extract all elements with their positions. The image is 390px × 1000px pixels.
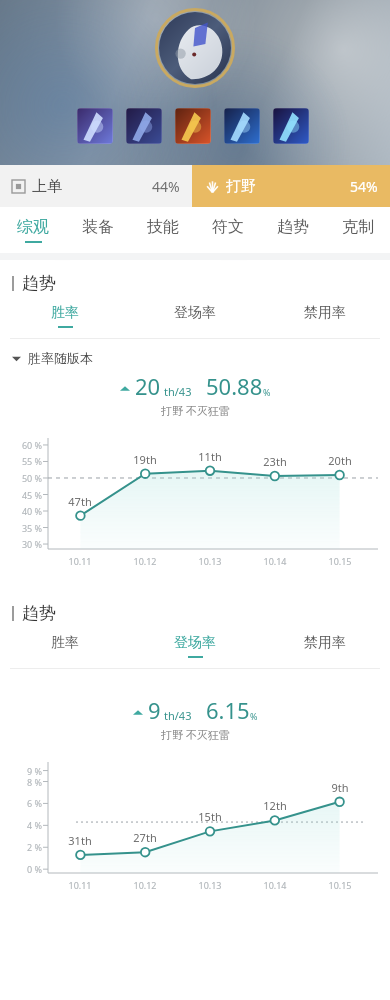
staticText: 9 % xyxy=(10,765,42,777)
staticText: 10.15 xyxy=(320,879,360,891)
button[interactable]: 登场率 xyxy=(130,624,260,668)
staticText: 打野 不灭狂雷 xyxy=(161,403,230,418)
button[interactable]: Skill 2 xyxy=(126,108,162,144)
staticText: 10.11 xyxy=(60,879,100,891)
staticText: 10.13 xyxy=(190,555,230,567)
button[interactable]: 禁用率 xyxy=(260,624,390,668)
staticText: 趋势 xyxy=(277,217,309,237)
button[interactable]: 打野 xyxy=(192,165,390,207)
staticText: 10.15 xyxy=(320,555,360,567)
staticText: % xyxy=(263,386,271,398)
staticText: 上单 xyxy=(32,177,62,196)
staticText: 禁用率 xyxy=(304,304,346,322)
staticText: 禁用率 xyxy=(304,634,346,652)
staticText: 40 % xyxy=(10,505,42,517)
staticText: 9 xyxy=(148,695,161,725)
button[interactable]: 上单 xyxy=(0,165,192,207)
staticText: 2 % xyxy=(10,841,42,853)
button[interactable]: 装备 xyxy=(65,207,130,253)
staticText: 10.12 xyxy=(125,879,165,891)
staticText: 23th xyxy=(255,454,295,469)
button[interactable]: 胜率 xyxy=(0,294,130,338)
staticText: 27th xyxy=(125,830,165,845)
staticText: 19th xyxy=(125,452,165,467)
staticText: 50 % xyxy=(10,472,42,484)
staticText: 技能 xyxy=(147,217,179,237)
button[interactable]: 趋势 xyxy=(260,207,325,253)
staticText: 装备 xyxy=(82,217,114,237)
staticText: 6.15 xyxy=(206,695,250,725)
staticText: 克制 xyxy=(342,217,374,237)
staticText: 8 % xyxy=(10,776,42,788)
staticText: % xyxy=(250,710,258,722)
staticText: 符文 xyxy=(212,217,244,237)
button[interactable]: 克制 xyxy=(325,207,390,253)
staticText: 45 % xyxy=(10,489,42,501)
staticText: 趋势 xyxy=(22,273,56,294)
button[interactable]: Skill 1 xyxy=(77,108,113,144)
staticText: 12th xyxy=(255,798,295,813)
staticText: 20 xyxy=(135,371,161,401)
staticText: 打野 不灭狂雷 xyxy=(161,727,230,742)
staticText: 54% xyxy=(350,177,378,196)
staticText: 15th xyxy=(190,809,230,824)
staticText: 0 % xyxy=(10,863,42,875)
staticText: 10.14 xyxy=(255,879,295,891)
staticText: 打野 xyxy=(226,177,256,196)
staticText: th/43 xyxy=(164,384,192,399)
button[interactable]: 登场率 xyxy=(130,294,260,338)
staticText: 35 % xyxy=(10,522,42,534)
staticText: 登场率 xyxy=(174,634,216,652)
staticText: 10.11 xyxy=(60,555,100,567)
staticText: 10.13 xyxy=(190,879,230,891)
button[interactable]: 符文 xyxy=(195,207,260,253)
button[interactable]: Skill 3 xyxy=(175,108,211,144)
staticText: 胜率 xyxy=(51,304,79,322)
staticText: 综观 xyxy=(17,217,49,237)
button[interactable]: 胜率 xyxy=(0,624,130,668)
staticText: 20th xyxy=(320,453,360,468)
button[interactable]: Skill 4 xyxy=(224,108,260,144)
staticText: 10.12 xyxy=(125,555,165,567)
staticText: 4 % xyxy=(10,819,42,831)
staticText: 10.14 xyxy=(255,555,295,567)
staticText: 55 % xyxy=(10,455,42,467)
button[interactable]: 禁用率 xyxy=(260,294,390,338)
button[interactable]: 技能 xyxy=(130,207,195,253)
staticText: 47th xyxy=(60,494,100,509)
staticText: 趋势 xyxy=(22,603,56,624)
staticText: 胜率随版本 xyxy=(28,350,93,366)
staticText: 30 % xyxy=(10,538,42,550)
staticText: th/43 xyxy=(164,708,192,723)
staticText: 44% xyxy=(152,177,180,196)
staticText: 9th xyxy=(320,780,360,795)
button[interactable]: Skill 5 xyxy=(273,108,309,144)
staticText: 胜率 xyxy=(51,634,79,652)
staticText: 11th xyxy=(190,449,230,464)
button[interactable]: 综观 xyxy=(0,207,65,253)
staticText: 31th xyxy=(60,833,100,848)
staticText: 登场率 xyxy=(174,304,216,322)
staticText: 50.88 xyxy=(206,371,263,401)
staticText: 6 % xyxy=(10,797,42,809)
button[interactable]: Champion avatar xyxy=(155,8,235,88)
staticText: 60 % xyxy=(10,439,42,451)
